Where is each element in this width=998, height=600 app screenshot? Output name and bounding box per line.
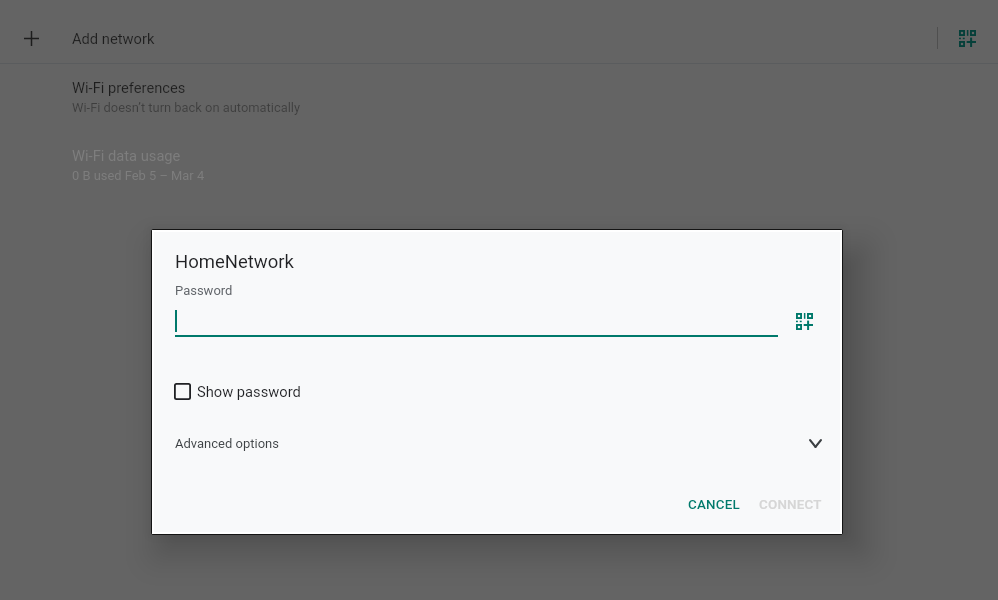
staticText: Advanced options <box>175 436 279 451</box>
staticText: Password <box>175 283 233 298</box>
staticText: HomeNetwork <box>175 251 294 273</box>
button[interactable]: Wi-Fi preferences <box>0 72 998 123</box>
staticText: CANCEL <box>688 497 740 513</box>
button[interactable]: Add network <box>0 0 998 63</box>
button[interactable]: Advanced options <box>152 427 838 459</box>
staticText: Wi-Fi data usage <box>72 147 181 164</box>
button[interactable]: CONNECT <box>750 489 831 521</box>
staticText: Wi-Fi doesn’t turn back on automatically <box>72 100 301 115</box>
button[interactable]: Show password <box>152 375 838 407</box>
staticText: Wi-Fi preferences <box>72 79 186 96</box>
staticText: 0 B used Feb 5 – Mar 4 <box>72 168 205 183</box>
staticText: CONNECT <box>759 497 822 513</box>
staticText: Add network <box>72 30 155 47</box>
button[interactable]: Scan QR code to add network <box>937 7 998 70</box>
staticText: Show password <box>197 383 301 400</box>
button[interactable]: Scan QR code <box>785 302 823 340</box>
button[interactable]: CANCEL <box>679 489 749 521</box>
